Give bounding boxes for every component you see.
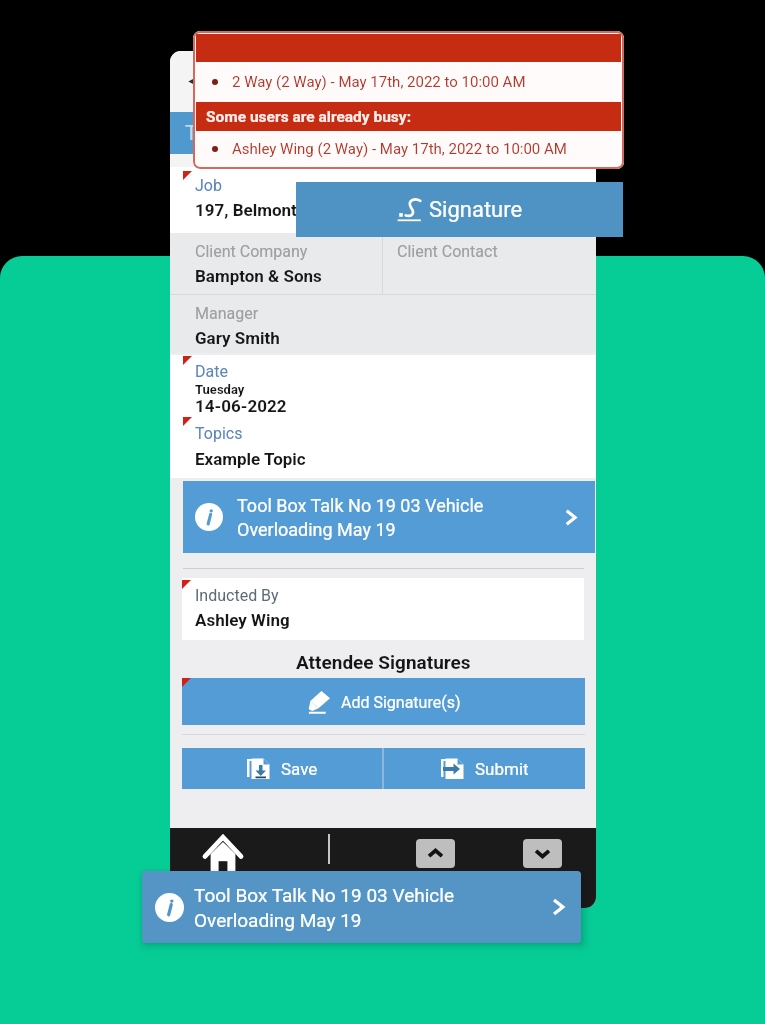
staticText: Tool Box Talk No 19 03 Vehicle Overloadi… <box>237 495 560 540</box>
button[interactable]: Next <box>523 839 562 868</box>
staticText: Manager <box>195 304 259 323</box>
button[interactable]: Home <box>191 828 255 880</box>
staticText: Ashley Wing <box>195 610 290 630</box>
staticText: Tuesday <box>195 382 245 397</box>
button[interactable]: Submit <box>384 748 585 789</box>
button[interactable]: Previous <box>416 839 455 868</box>
staticText: Some users are already busy: <box>206 108 412 126</box>
staticText: T <box>185 121 198 146</box>
staticText: Topics <box>195 424 243 443</box>
staticText: Submit <box>475 759 529 779</box>
staticText: Job <box>195 176 222 195</box>
staticText: Signature <box>429 197 523 223</box>
button[interactable]: Save <box>182 748 382 789</box>
staticText: Bampton & Sons <box>195 266 322 286</box>
staticText: Date <box>195 362 228 381</box>
staticText: Example Topic <box>195 449 306 469</box>
staticText: Ashley Wing (2 Way) - May 17th, 2022 to … <box>232 140 567 158</box>
staticText: Client Company <box>195 242 308 261</box>
staticText: Inducted By <box>195 586 279 605</box>
staticText: 197, Belmont R <box>195 200 312 220</box>
staticText: Add Signature(s) <box>341 693 461 712</box>
button[interactable]: Add Signature(s) <box>182 678 585 725</box>
staticText: Gary Smith <box>195 328 280 348</box>
staticText: Client Contact <box>397 242 498 261</box>
staticText: Attendee Signatures <box>296 651 471 673</box>
button[interactable]: Tool Box Talk No 19 03 Vehicle Overloadi… <box>183 481 595 553</box>
staticText: 2 Way (2 Way) - May 17th, 2022 to 10:00 … <box>232 73 526 91</box>
staticText: 14-06-2022 <box>195 396 287 416</box>
staticText: Tool Box Talk No 19 03 Vehicle Overloadi… <box>194 884 547 931</box>
button[interactable]: Tool Box Talk No 19 03 Vehicle Overloadi… <box>142 871 581 943</box>
staticText: Save <box>281 759 318 779</box>
button[interactable]: Back <box>180 65 214 99</box>
button[interactable]: Signature <box>296 182 623 237</box>
